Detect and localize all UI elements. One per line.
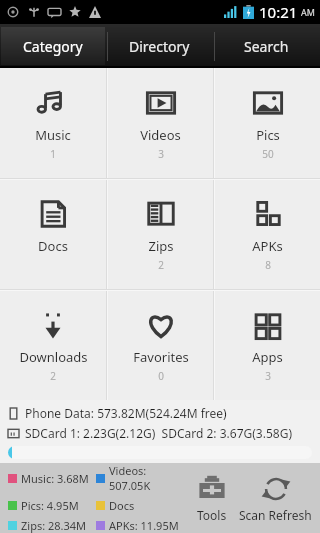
staticText: Favorites <box>133 348 189 366</box>
staticText: Zips: 28.34M <box>21 518 87 533</box>
staticText: Scan Refresh <box>239 507 312 523</box>
staticText: Tools <box>197 507 227 523</box>
staticText: Phone Data: 573.82M(524.24M free) <box>25 405 227 421</box>
staticText: 3 <box>158 147 164 161</box>
staticText: 2 <box>50 369 56 383</box>
staticText: Zips <box>148 237 174 255</box>
staticText: Downloads <box>19 348 88 366</box>
staticText: 8 <box>265 258 271 272</box>
staticText: AM <box>301 6 315 18</box>
staticText: 50 <box>262 147 274 161</box>
staticText: Pics <box>256 126 280 144</box>
staticText: Category <box>23 37 83 56</box>
staticText: APKs <box>252 237 283 255</box>
button[interactable]: Search <box>214 27 319 65</box>
staticText: 1 <box>50 147 56 161</box>
staticText: SDCard 1: 2.23G(2.12G) SDCard 2: 3.67G(3… <box>25 425 292 441</box>
staticText: Pics: 4.95M <box>21 498 79 513</box>
button[interactable]: Favorites <box>108 291 213 400</box>
staticText: 2 <box>158 258 164 272</box>
staticText: Docs <box>109 498 135 513</box>
staticText: Search <box>244 37 289 56</box>
button[interactable]: Videos <box>108 68 213 178</box>
staticText: 10:21 <box>259 2 298 22</box>
staticText: Music <box>35 126 71 144</box>
button[interactable]: Docs <box>0 180 106 289</box>
staticText: 0 <box>158 369 164 383</box>
button[interactable]: Category <box>1 27 105 65</box>
button[interactable]: Scan Refresh <box>235 474 316 523</box>
staticText: Apps <box>252 348 283 366</box>
staticText: Music: 3.68M <box>21 471 89 486</box>
staticText: Docs <box>38 237 68 255</box>
button[interactable]: Music <box>0 68 106 178</box>
staticText: Videos <box>140 126 181 144</box>
button[interactable]: APKs <box>215 180 320 289</box>
button[interactable]: Downloads <box>0 291 106 400</box>
staticText: APKs: 11.95M <box>109 518 179 533</box>
button[interactable]: Tools <box>193 474 231 523</box>
staticText: Videos: 507.05K <box>109 463 186 493</box>
staticText: 3 <box>265 369 271 383</box>
button[interactable]: Pics <box>215 68 320 178</box>
button[interactable]: Directory <box>107 27 212 65</box>
button[interactable]: Zips <box>108 180 213 289</box>
staticText: Directory <box>129 37 190 56</box>
button[interactable]: Apps <box>215 291 320 400</box>
